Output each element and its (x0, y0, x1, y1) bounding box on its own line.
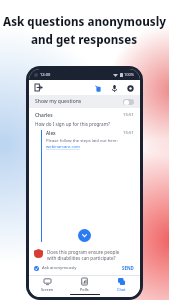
button[interactable]: Exit (34, 83, 43, 92)
staticText: and get responses (31, 32, 138, 48)
staticText: Ask questions anonymously (3, 14, 166, 30)
button[interactable]: Screen (29, 276, 66, 294)
button[interactable]: Polls (66, 276, 103, 294)
staticText: How do I sign up for this program? (35, 121, 110, 127)
staticText: Please follow the steps laid out here: (46, 138, 118, 144)
staticText: Ask anonymously (42, 265, 77, 271)
button[interactable]: webinarcare.com (46, 144, 80, 150)
staticText: Show my questions (35, 98, 82, 105)
staticText: 15:51 (123, 112, 134, 118)
button[interactable] (123, 99, 134, 105)
staticText: Polls (80, 287, 89, 292)
staticText: Does this program ensure people with dis… (47, 249, 120, 261)
staticText: Charles (35, 112, 53, 119)
button[interactable]: Settings (125, 83, 135, 93)
staticText: Alex (46, 130, 56, 136)
button[interactable]: Microphone (109, 83, 119, 93)
button[interactable] (34, 266, 39, 271)
button[interactable]: SEND (121, 264, 135, 272)
button[interactable]: Scroll to latest (78, 229, 91, 242)
staticText: 15:51 (123, 130, 134, 136)
staticText: Screen (41, 287, 54, 292)
staticText: 100% (124, 72, 135, 77)
staticText: SEND (122, 265, 134, 271)
button[interactable]: Raise hand (93, 83, 103, 93)
staticText: 12:00 (40, 72, 51, 77)
staticText: Chat (117, 287, 126, 292)
button[interactable]: Chat (103, 276, 140, 294)
